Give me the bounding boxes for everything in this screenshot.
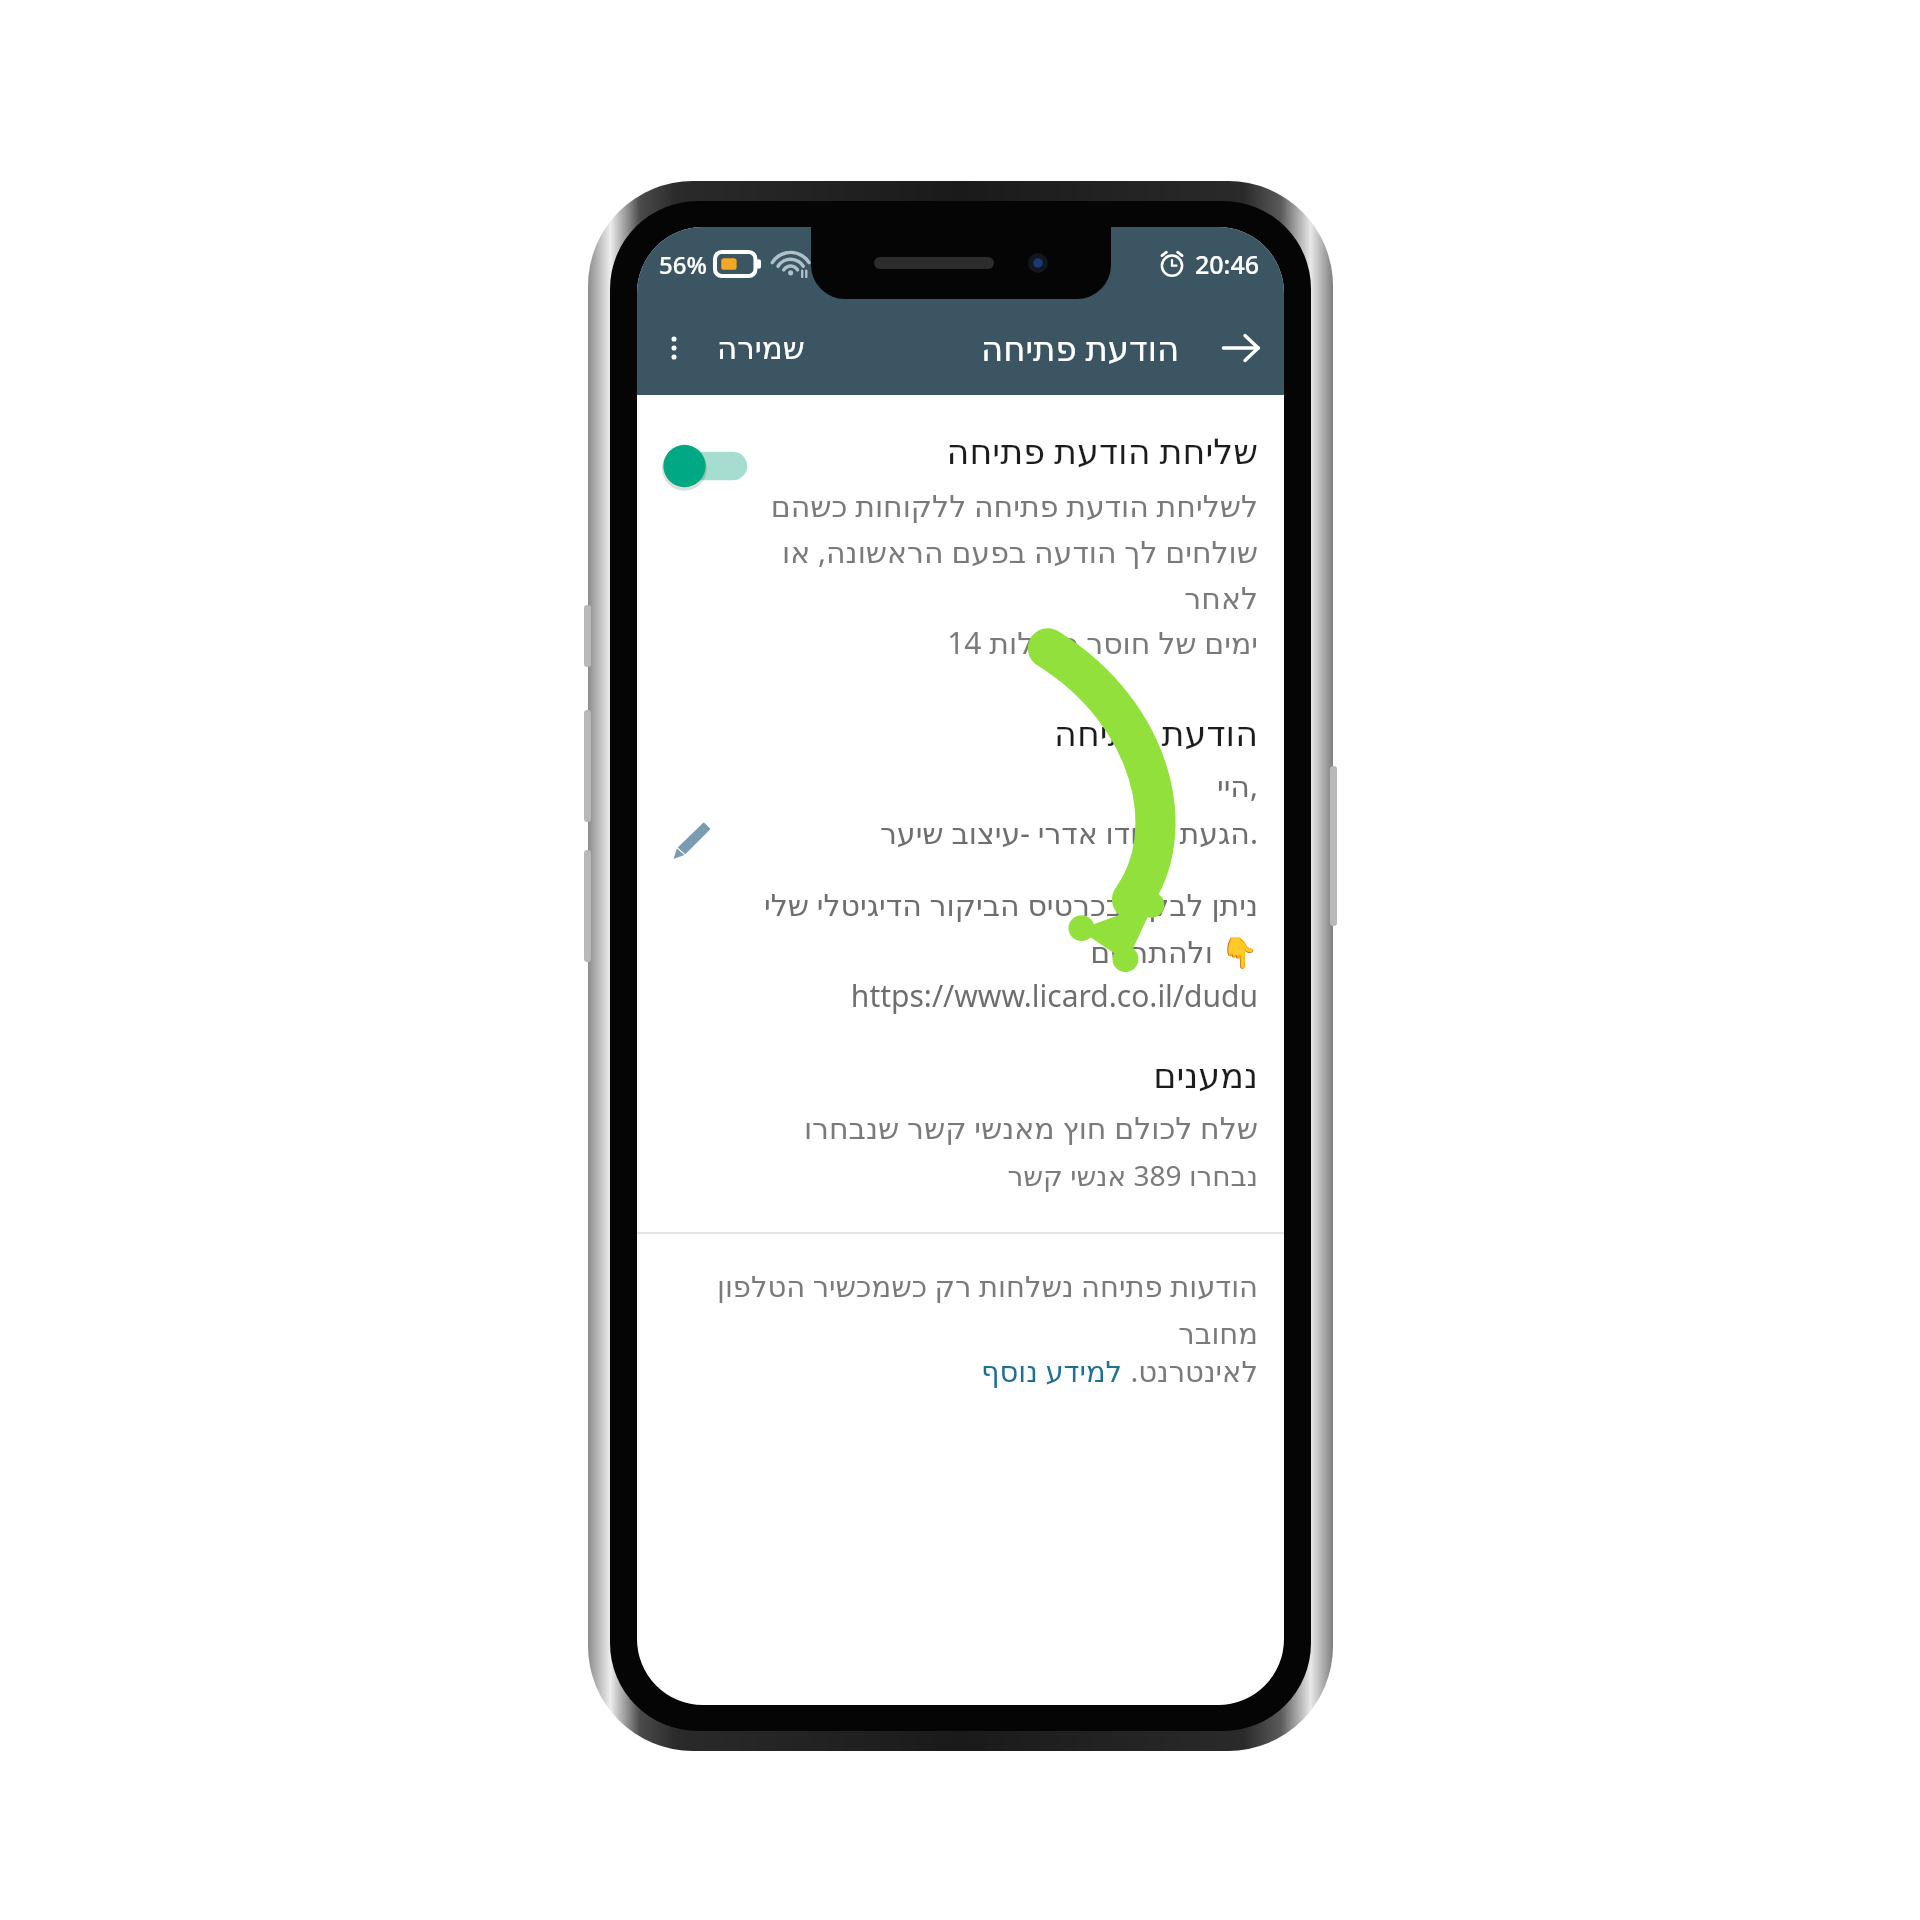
staticText: שלח לכולם חוץ מאנשי קשר שנבחרו (803, 1107, 1258, 1148)
button[interactable]: למידע נוסף (981, 1351, 1123, 1390)
button[interactable]: שמירה (705, 320, 817, 376)
button[interactable]: שליחת הודעת פתיחה (637, 419, 1284, 673)
staticText: למידע נוסף (981, 1351, 1123, 1390)
staticText: הודעת פתיחה (981, 325, 1180, 371)
staticText: 20:46 (1195, 247, 1260, 281)
staticText: 56% (659, 248, 707, 281)
staticText: היי, הגעת לדודו אדרי -עיצוב שיער. (879, 765, 1258, 852)
staticText: שמירה (717, 330, 805, 366)
staticText: נמענים (1153, 1056, 1258, 1097)
staticText: .לאינטרנט (1123, 1351, 1258, 1390)
staticText: לשליחת הודעת פתיחה ללקוחות כשהם שולחים ל… (749, 485, 1258, 663)
staticText: הודעות פתיחה נשלחות רק כשמכשיר הטלפון מח… (663, 1266, 1258, 1351)
button[interactable]: נמענים (637, 1054, 1284, 1210)
staticText: נבחרו 389 אנשי קשר (1007, 1156, 1258, 1194)
other: Edit greeting message (669, 817, 715, 863)
button[interactable]: Edit greeting message (637, 707, 1284, 1022)
staticText: הודעת פתיחה (1054, 709, 1258, 757)
staticText: ניתן לבקר בכרטיס הביקור הדיגיטלי שלי ולה… (763, 884, 1258, 971)
button[interactable]: Back (1208, 315, 1274, 381)
staticText: שליחת הודעת פתיחה (946, 427, 1258, 475)
button[interactable]: More options (643, 317, 705, 379)
staticText: https://www.licard.co.il/dudu (850, 975, 1258, 1016)
